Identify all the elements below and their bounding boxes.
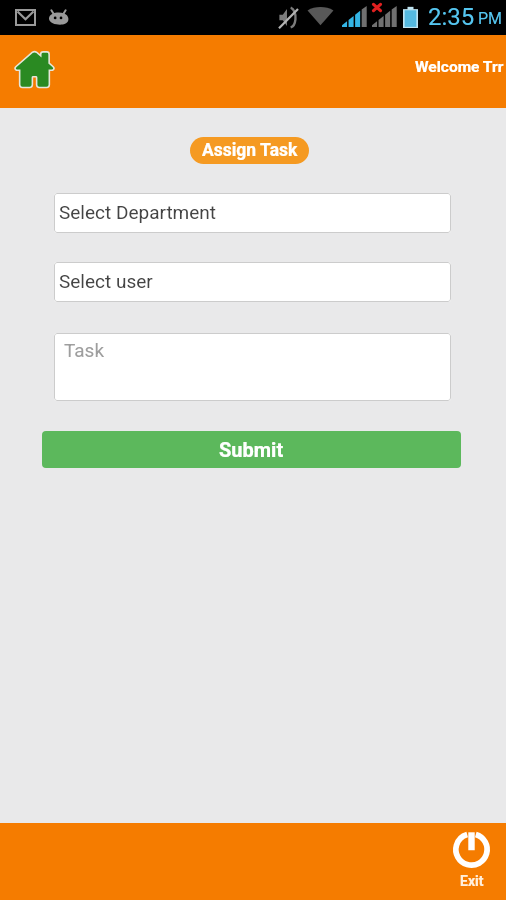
staticText: Task <box>64 339 105 361</box>
staticText: Select Department <box>59 201 217 223</box>
button[interactable]: Home <box>14 49 54 89</box>
staticText: Welcome Trr <box>415 58 504 76</box>
staticText: Select user <box>59 270 153 292</box>
staticText: PM <box>478 9 503 28</box>
button[interactable]: Submit <box>42 431 461 468</box>
button[interactable]: Task <box>54 333 451 401</box>
button[interactable]: Select Department <box>54 193 451 233</box>
staticText: Assign Task <box>202 140 298 161</box>
staticText: Submit <box>219 438 284 461</box>
staticText: Exit <box>460 873 484 889</box>
button[interactable]: Select user <box>54 262 451 302</box>
button[interactable]: Exit <box>447 826 496 894</box>
button[interactable]: Assign Task <box>190 137 309 164</box>
staticText: 2:35 <box>428 3 475 31</box>
